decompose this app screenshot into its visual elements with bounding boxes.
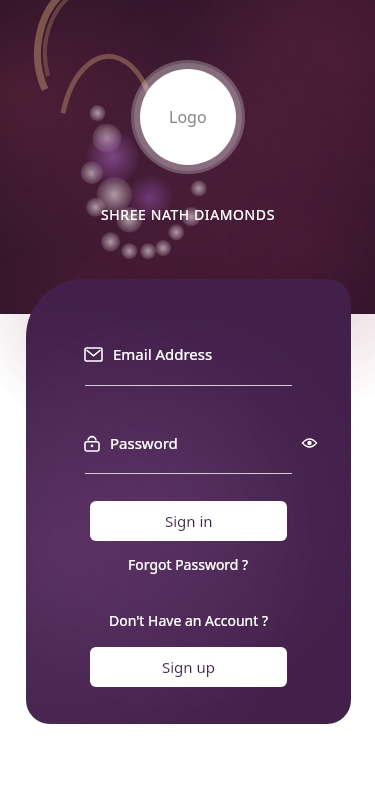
staticText: Password	[110, 433, 178, 453]
button[interactable]: Password	[85, 433, 319, 453]
button[interactable]: Logo	[140, 69, 236, 165]
staticText: SHREE NATH DIAMONDS	[101, 205, 275, 224]
other: Email	[85, 348, 102, 361]
other: Password	[85, 435, 99, 451]
button[interactable]: Forgot Password ?	[120, 553, 257, 576]
button[interactable]: Email	[85, 344, 319, 364]
button[interactable]: Sign in	[90, 501, 287, 541]
staticText: Logo	[169, 106, 207, 128]
staticText: Email Address	[113, 344, 213, 364]
staticText: Sign up	[162, 657, 215, 677]
staticText: Don't Have an Account ?	[109, 611, 268, 630]
button[interactable]: Sign up	[90, 647, 287, 687]
button[interactable]: Show password	[299, 433, 319, 453]
staticText: Sign in	[165, 511, 213, 531]
